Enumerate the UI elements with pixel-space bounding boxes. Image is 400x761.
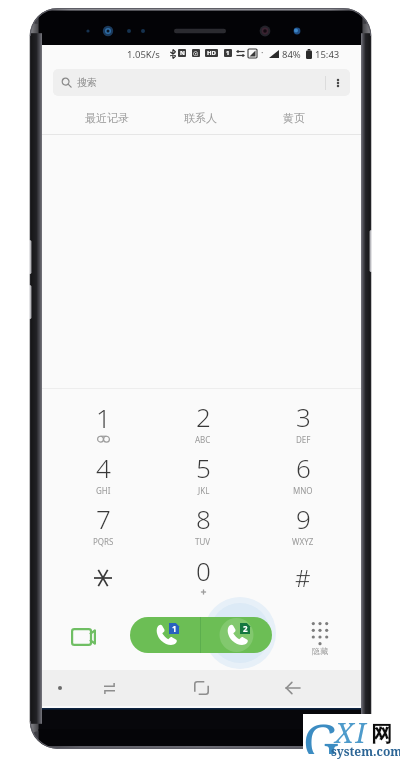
- button[interactable]: 7: [53, 498, 153, 549]
- staticText: 1: [226, 49, 230, 57]
- button[interactable]: 1: [53, 396, 153, 447]
- button[interactable]: 4: [53, 447, 153, 498]
- staticText: ☉: [193, 50, 199, 57]
- staticText: 搜索: [77, 76, 97, 89]
- staticText: 网: [371, 721, 392, 747]
- button[interactable]: 2: [153, 396, 253, 447]
- button[interactable]: 黄页: [247, 102, 340, 134]
- staticText: PQRS: [93, 536, 114, 547]
- staticText: 5: [196, 450, 211, 485]
- button[interactable]: Back: [274, 670, 310, 706]
- staticText: 2: [196, 399, 211, 434]
- staticText: 15:43: [315, 48, 340, 61]
- button[interactable]: Video call: [42, 616, 130, 654]
- staticText: HD: [207, 49, 216, 57]
- staticText: 84%: [282, 48, 301, 61]
- button[interactable]: Recents: [91, 670, 127, 706]
- button[interactable]: More options: [326, 69, 350, 96]
- button[interactable]: Menu hint: [47, 672, 73, 704]
- staticText: 1: [96, 400, 111, 435]
- button[interactable]: Call with SIM 1: [130, 617, 200, 653]
- staticText: XI: [335, 713, 368, 751]
- staticText: 4: [96, 450, 111, 485]
- staticText: 2: [243, 623, 248, 634]
- button[interactable]: 5: [153, 447, 253, 498]
- staticText: ABC: [195, 434, 211, 445]
- staticText: TUV: [195, 536, 211, 547]
- button[interactable]: Home: [183, 670, 219, 706]
- staticText: 0: [196, 553, 211, 588]
- staticText: JKL: [198, 485, 210, 496]
- staticText: GHI: [96, 485, 111, 496]
- button[interactable]: #: [253, 549, 353, 600]
- staticText: N: [180, 49, 185, 57]
- staticText: 9: [296, 501, 311, 536]
- staticText: #: [295, 561, 311, 594]
- button[interactable]: 8: [153, 498, 253, 549]
- staticText: 联系人: [184, 111, 217, 125]
- button[interactable]: 6: [253, 447, 353, 498]
- staticText: 6: [296, 450, 311, 485]
- button[interactable]: 0: [153, 549, 253, 600]
- staticText: G: [303, 707, 339, 754]
- button[interactable]: Call with SIM 2: [201, 617, 272, 653]
- button[interactable]: 9: [253, 498, 353, 549]
- button[interactable]: [53, 549, 153, 600]
- staticText: 1: [172, 623, 177, 634]
- button[interactable]: 最近记录: [60, 102, 154, 134]
- staticText: WXYZ: [292, 536, 314, 547]
- staticText: 最近记录: [85, 111, 129, 125]
- staticText: ·: [261, 46, 264, 58]
- staticText: 3: [296, 399, 311, 434]
- staticText: 黄页: [283, 111, 305, 125]
- staticText: 8: [196, 501, 211, 536]
- staticText: 隐藏: [312, 646, 328, 656]
- staticText: MNO: [293, 485, 313, 496]
- button[interactable]: 3: [253, 396, 353, 447]
- button[interactable]: Hide keypad: [272, 616, 361, 654]
- button[interactable]: 搜索: [53, 69, 350, 96]
- button[interactable]: 联系人: [154, 102, 247, 134]
- staticText: system.com: [331, 743, 400, 759]
- staticText: DEF: [296, 434, 311, 445]
- staticText: 7: [96, 501, 111, 536]
- staticText: 1.05K/s: [127, 48, 160, 61]
